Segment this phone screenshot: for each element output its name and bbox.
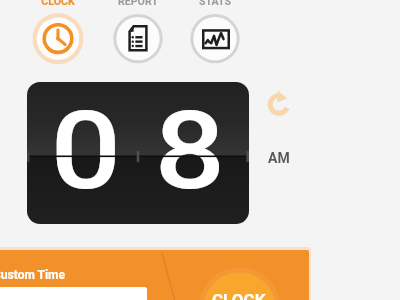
button[interactable]: CLOCK <box>28 0 88 70</box>
staticText: CLOCK <box>212 290 266 300</box>
button[interactable]: 0 <box>27 82 249 224</box>
staticText: AM <box>268 150 290 166</box>
button[interactable]: AM <box>268 150 298 166</box>
button[interactable]: REPORT <box>108 0 168 70</box>
staticText: 8 <box>154 89 225 214</box>
staticText: STATS <box>185 0 245 9</box>
staticText: CLOCK <box>28 0 88 9</box>
button[interactable]: STATS <box>185 0 245 70</box>
staticText: REPORT <box>108 0 168 9</box>
button[interactable]: CLOCK <box>0 247 311 300</box>
button[interactable]: Refresh <box>266 90 292 118</box>
staticText: 0 <box>50 89 121 214</box>
button[interactable] <box>0 287 147 300</box>
staticText: Custom Time <box>0 268 65 282</box>
